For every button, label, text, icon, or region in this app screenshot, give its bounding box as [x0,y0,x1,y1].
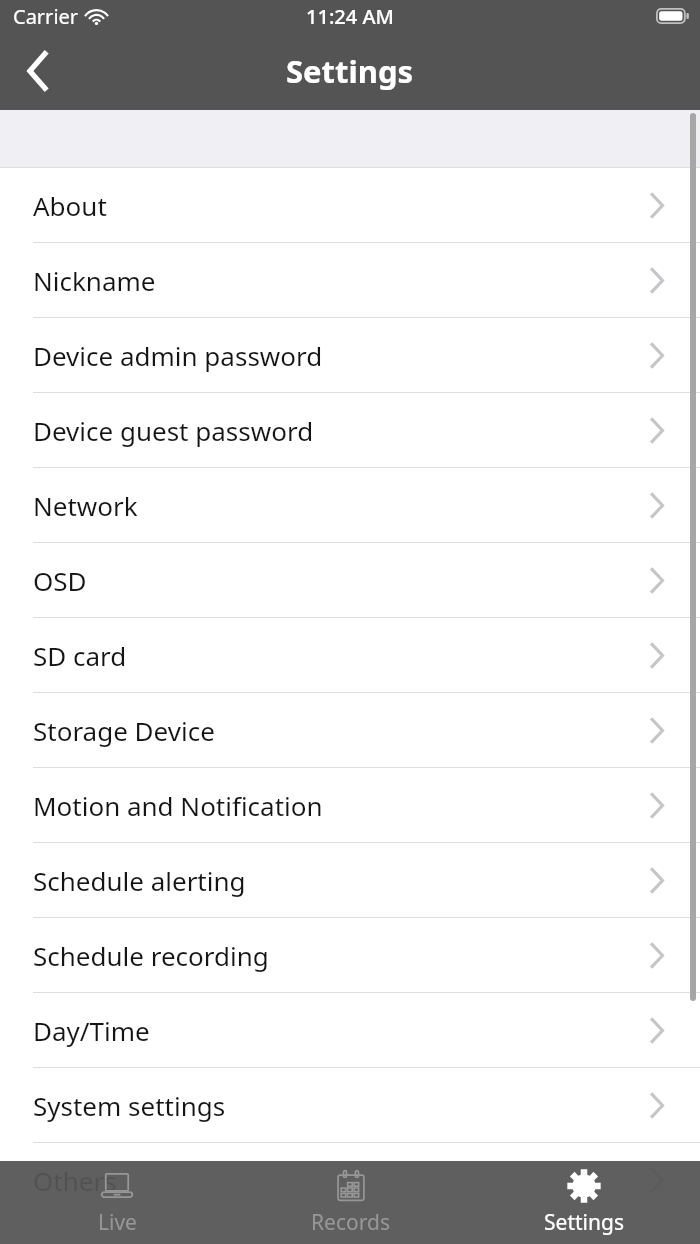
button[interactable]: Nickname [0,243,700,317]
button[interactable]: Device admin password [0,318,700,392]
staticText: Device guest password [33,413,314,448]
staticText: Device admin password [33,338,323,373]
staticText: Carrier [13,3,79,30]
staticText: Day/Time [33,1013,150,1048]
staticText: Network [33,488,138,523]
button[interactable]: Others [0,1143,700,1217]
button[interactable]: About [0,168,700,242]
staticText: Others [33,1163,117,1198]
button[interactable]: OSD [0,543,700,617]
staticText: Settings [286,50,414,92]
button[interactable]: Network [0,468,700,542]
button[interactable]: Schedule alerting [0,843,700,917]
staticText: About [33,188,107,223]
button[interactable]: Schedule recording [0,918,700,992]
button[interactable]: System settings [0,1068,700,1142]
button[interactable]: Records [234,1161,467,1244]
button[interactable]: Day/Time [0,993,700,1067]
staticText: OSD [33,563,87,598]
button[interactable]: Device guest password [0,393,700,467]
staticText: 11:24 AM [306,3,394,30]
staticText: Live [98,1208,137,1237]
staticText: Nickname [33,263,156,298]
button[interactable]: Settings [467,1161,700,1244]
staticText: Schedule alerting [33,863,246,898]
button[interactable]: SD card [0,618,700,692]
staticText: Storage Device [33,713,215,748]
staticText: Records [311,1208,390,1237]
staticText: Schedule recording [33,938,269,973]
staticText: Settings [544,1208,624,1237]
button[interactable]: Back [0,32,78,110]
button[interactable]: Motion and Notification [0,768,700,842]
staticText: System settings [33,1088,226,1123]
staticText: Motion and Notification [33,788,323,823]
staticText: SD card [33,638,127,673]
button[interactable]: Storage Device [0,693,700,767]
button[interactable]: Live [0,1161,234,1244]
